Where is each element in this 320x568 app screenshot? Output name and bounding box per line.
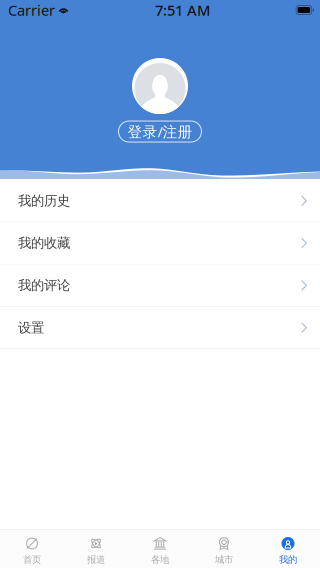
staticText: 城市 — [215, 554, 233, 565]
button[interactable]: 首页 — [0, 530, 64, 568]
staticText: 登录/注册 — [127, 122, 192, 141]
staticText: 设置 — [18, 319, 44, 336]
button[interactable]: 报道 — [64, 530, 128, 568]
staticText: 7:51 AM — [155, 0, 210, 20]
button[interactable]: 各地 — [128, 530, 192, 568]
button[interactable]: 我的收藏 — [0, 222, 320, 265]
staticText: Carrier — [8, 0, 55, 20]
staticText: 我的 — [279, 554, 297, 565]
button[interactable]: 我的历史 — [0, 180, 320, 222]
button[interactable]: 我的评论 — [0, 265, 320, 307]
button[interactable]: 城市 — [192, 530, 256, 568]
button[interactable]: 设置 — [0, 307, 320, 349]
staticText: 首页 — [23, 554, 41, 565]
staticText: 我的历史 — [18, 193, 70, 209]
staticText: 报道 — [87, 554, 105, 565]
staticText: 我的评论 — [18, 277, 70, 294]
staticText: 各地 — [151, 554, 169, 565]
staticText: 我的收藏 — [18, 235, 70, 251]
button[interactable]: 我的 — [256, 530, 320, 568]
button[interactable]: 登录/注册 — [118, 121, 201, 142]
